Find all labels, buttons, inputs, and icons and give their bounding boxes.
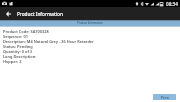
button[interactable]: Print bbox=[153, 94, 176, 100]
staticText: Print bbox=[161, 95, 169, 100]
staticText: Description: M4 Natural Grey - 36 Hour R… bbox=[3, 39, 94, 44]
staticText: Hopper: 2 bbox=[3, 59, 22, 64]
staticText: Long Description: bbox=[3, 54, 37, 59]
button[interactable]: Navigate back bbox=[0, 7, 17, 20]
staticText: Product Information bbox=[77, 21, 103, 25]
staticText: Status: Pending bbox=[3, 44, 33, 49]
staticText: 08:34 bbox=[166, 1, 178, 7]
staticText: Product Code: SA700328 bbox=[3, 29, 49, 34]
staticText: Product Information bbox=[17, 11, 63, 17]
staticText: Sequence: 01 bbox=[3, 34, 28, 39]
staticText: Quantity: 0 of 3 bbox=[3, 49, 33, 54]
